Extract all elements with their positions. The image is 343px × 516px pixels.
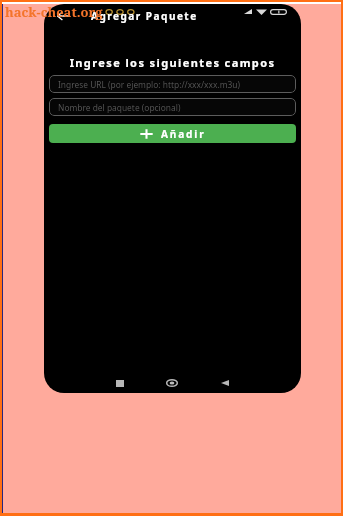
staticText: Ingrese los siguientes campos [44,55,301,70]
staticText: Agregar Paquete [91,9,198,23]
button[interactable]: Back [52,5,74,27]
button[interactable]: Ingrese URL (por ejemplo: http://xxx/xxx… [49,75,296,93]
staticText: Ingrese URL (por ejemplo: http://xxx/xxx… [58,79,241,90]
staticText: hack-cheat.org [5,3,103,21]
staticText: Añadir [161,127,206,141]
staticText: Nombre del paquete (opcional) [58,102,181,113]
button[interactable]: Back [215,373,235,393]
button[interactable]: Recent apps [110,373,130,393]
button[interactable]: Nombre del paquete (opcional) [49,98,296,116]
button[interactable]: Home [162,373,182,393]
button[interactable]: Añadir [49,124,296,143]
